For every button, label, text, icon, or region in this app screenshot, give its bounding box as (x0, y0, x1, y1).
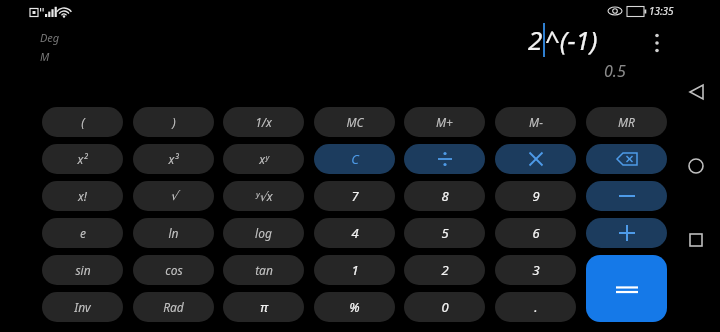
button[interactable]: M+ (404, 107, 485, 137)
button[interactable]: xʸ (223, 144, 304, 174)
staticText: 4 (351, 224, 359, 242)
staticText: 0 (441, 298, 449, 316)
staticText: MC (346, 114, 364, 130)
staticText: cos (165, 262, 183, 278)
button[interactable]: 9 (495, 181, 576, 211)
button[interactable]: 4 (314, 218, 395, 248)
button[interactable]: ) (133, 107, 214, 137)
button[interactable]: Divide (404, 144, 485, 174)
button[interactable]: % (314, 292, 395, 322)
staticText: ʸ√x (255, 188, 273, 204)
button[interactable]: MC (314, 107, 395, 137)
button[interactable]: ( (42, 107, 123, 137)
staticText: M- (529, 114, 543, 130)
button[interactable]: Plus (586, 218, 667, 248)
staticText: 2 (528, 22, 543, 57)
staticText: 7 (351, 187, 359, 205)
staticText: log (255, 225, 272, 241)
button[interactable]: Equals (586, 255, 667, 322)
button[interactable]: MR (586, 107, 667, 137)
button[interactable]: Minus (586, 181, 667, 211)
button[interactable]: 5 (404, 218, 485, 248)
button[interactable]: M- (495, 107, 576, 137)
button[interactable]: 1 (314, 255, 395, 285)
staticText: ln (168, 225, 179, 241)
button[interactable]: e (42, 218, 123, 248)
button[interactable]: 7 (314, 181, 395, 211)
button[interactable]: Recent apps (676, 220, 716, 260)
button[interactable]: sin (42, 255, 123, 285)
staticText: 13:35 (649, 4, 674, 18)
staticText: 5 (441, 224, 449, 242)
button[interactable]: 2 (404, 255, 485, 285)
staticText: MR (618, 114, 635, 130)
button[interactable]: π (223, 292, 304, 322)
staticText: x³ (168, 151, 179, 167)
staticText: 9 (532, 187, 540, 205)
button[interactable]: cos (133, 255, 214, 285)
button[interactable]: More options (646, 26, 668, 60)
button[interactable]: . (495, 292, 576, 322)
button[interactable]: C (314, 144, 395, 174)
button[interactable]: Multiply (495, 144, 576, 174)
staticText: 6 (532, 224, 540, 242)
staticText: x² (77, 151, 88, 167)
staticText: Inv (74, 299, 91, 315)
button[interactable]: Rad (133, 292, 214, 322)
staticText: Deg (40, 30, 60, 45)
staticText: 2 (441, 261, 449, 279)
staticText: xʸ (259, 151, 269, 167)
button[interactable]: x³ (133, 144, 214, 174)
staticText: 1 (351, 261, 359, 279)
button[interactable]: 3 (495, 255, 576, 285)
staticText: ( (81, 114, 85, 130)
staticText: 8 (441, 187, 449, 205)
button[interactable]: ln (133, 218, 214, 248)
staticText: % (349, 298, 360, 316)
button[interactable]: x² (42, 144, 123, 174)
button[interactable]: 0 (404, 292, 485, 322)
staticText: ^(−1) (545, 22, 598, 57)
button[interactable]: 6 (495, 218, 576, 248)
button[interactable]: Backspace (586, 144, 667, 174)
button[interactable]: 8 (404, 181, 485, 211)
staticText: Rad (163, 299, 184, 315)
button[interactable]: ʸ√x (223, 181, 304, 211)
button[interactable]: √ (133, 181, 214, 211)
button[interactable]: 1/x (223, 107, 304, 137)
staticText: 0.5 (604, 60, 626, 82)
button[interactable]: Inv (42, 292, 123, 322)
button[interactable]: Back (676, 72, 716, 112)
staticText: ) (172, 114, 176, 130)
staticText: tan (255, 262, 273, 278)
staticText: 1/x (255, 114, 272, 130)
button[interactable]: tan (223, 255, 304, 285)
staticText: M+ (436, 114, 453, 130)
button[interactable]: x! (42, 181, 123, 211)
staticText: 3 (532, 261, 540, 279)
staticText: C (351, 150, 359, 168)
staticText: sin (75, 262, 91, 278)
staticText: . (534, 298, 538, 316)
button[interactable]: log (223, 218, 304, 248)
staticText: √ (170, 189, 178, 203)
staticText: π (260, 298, 268, 316)
staticText: e (80, 225, 86, 241)
button[interactable]: Home (676, 146, 716, 186)
staticText: x! (78, 188, 87, 204)
staticText: M (40, 49, 50, 64)
